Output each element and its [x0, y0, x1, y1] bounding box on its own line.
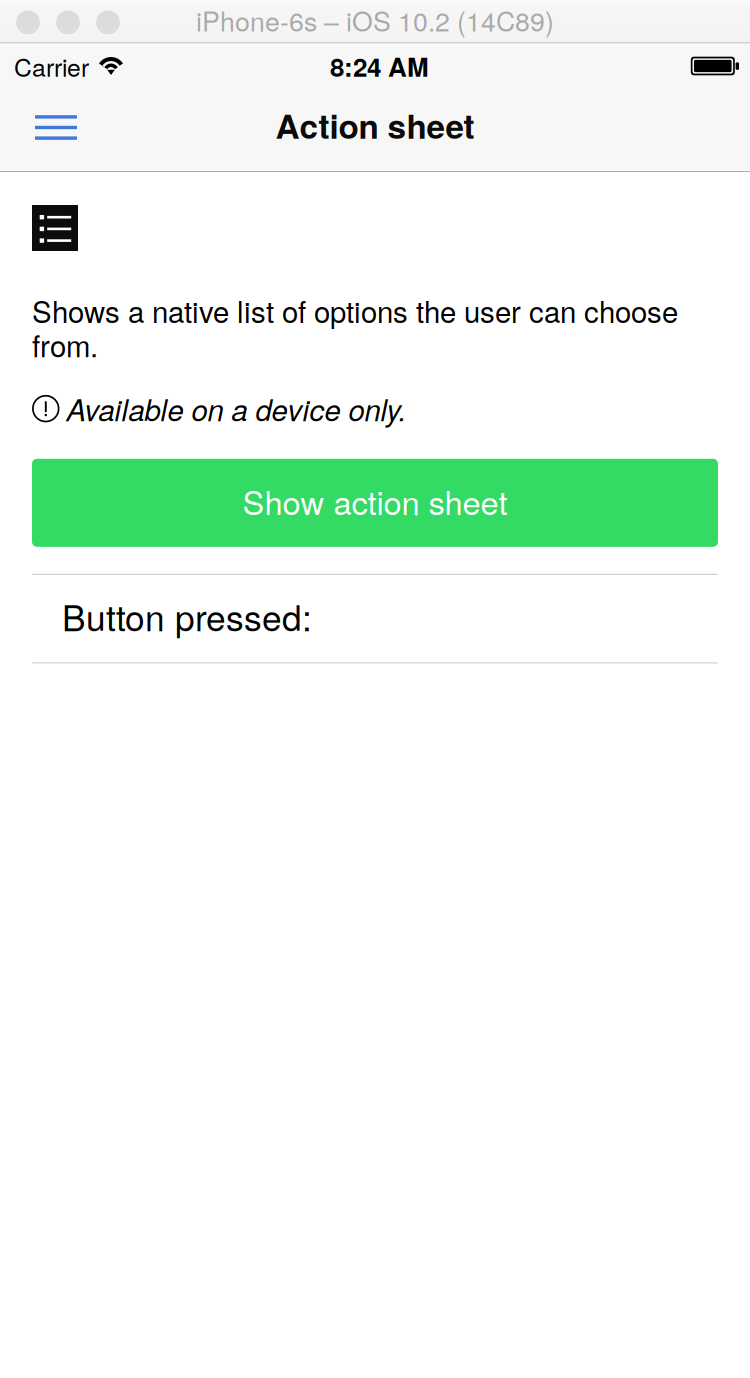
staticText: Button pressed:	[62, 591, 312, 641]
button[interactable]: Zoom window	[96, 10, 120, 34]
staticText: Carrier	[14, 48, 89, 84]
staticText: Shows a native list of options the user …	[32, 293, 678, 362]
staticText: Available on a device only.	[66, 392, 406, 426]
staticText: Action sheet	[275, 101, 474, 149]
staticText: iPhone-6s – iOS 10.2 (14C89)	[196, 1, 554, 39]
button[interactable]: Menu	[19, 96, 93, 158]
button[interactable]: Show action sheet	[32, 459, 718, 547]
staticText: 8:24 AM	[330, 47, 429, 85]
button[interactable]: Minimize window	[56, 10, 80, 34]
staticText: Show action sheet	[242, 477, 507, 524]
button[interactable]: Close window	[16, 10, 40, 34]
